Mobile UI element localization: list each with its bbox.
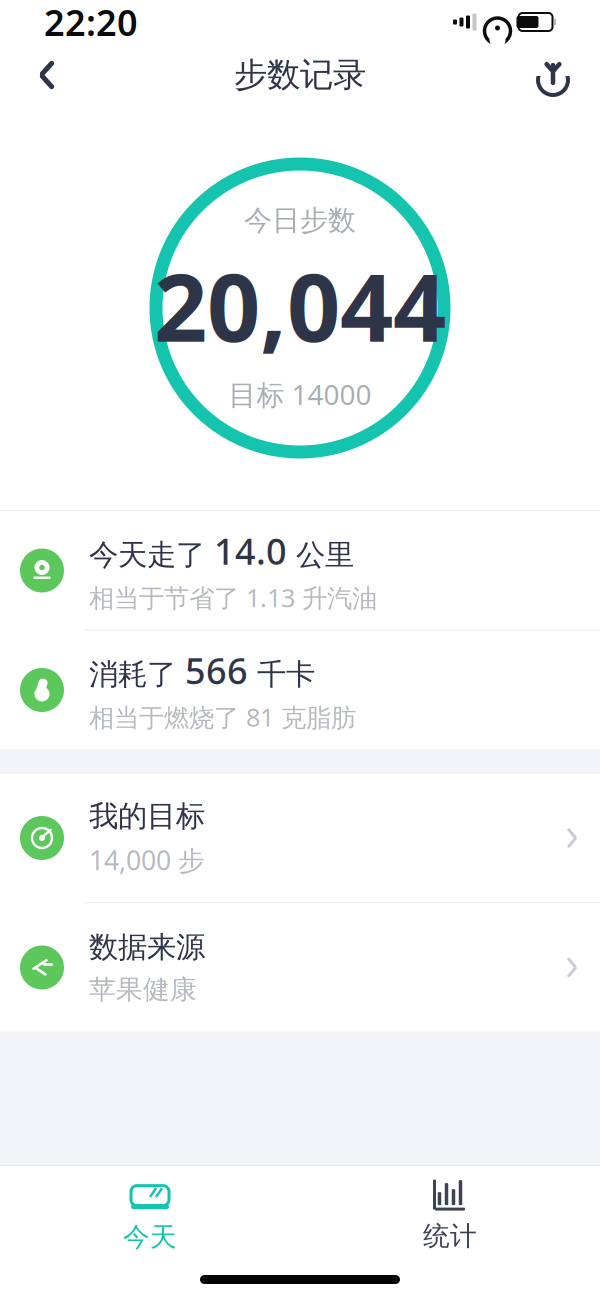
- staticText: 14.0: [205, 527, 296, 575]
- staticText: 统计: [423, 1220, 477, 1252]
- staticText: 相当于节省了 1.13 升汽油: [89, 581, 377, 614]
- staticText: 数据来源: [89, 929, 205, 965]
- staticText: 我的目标: [89, 798, 205, 834]
- button[interactable]: 数据来源: [0, 903, 600, 1031]
- staticText: 今天: [123, 1221, 177, 1253]
- staticText: 20,044: [154, 244, 446, 367]
- button[interactable]: 我的目标: [0, 774, 600, 902]
- staticText: 千卡: [257, 656, 315, 692]
- staticText: 今日步数: [244, 203, 356, 238]
- staticText: 相当于燃烧了 81 克脂肪: [89, 700, 356, 734]
- staticText: 14,000 步: [89, 842, 205, 878]
- staticText: 目标 14000: [228, 376, 371, 413]
- button[interactable]: 返回: [20, 48, 74, 102]
- staticText: 今天走了: [89, 537, 205, 573]
- button[interactable]: 今天: [0, 1166, 300, 1265]
- staticText: 566: [176, 646, 257, 694]
- button[interactable]: 分享: [526, 48, 580, 102]
- staticText: 步数记录: [234, 54, 366, 95]
- staticText: 公里: [296, 537, 354, 573]
- staticText: 22:20: [44, 0, 138, 46]
- button[interactable]: 统计: [300, 1167, 600, 1264]
- staticText: 消耗了: [89, 656, 176, 692]
- staticText: 苹果健康: [89, 973, 197, 1006]
